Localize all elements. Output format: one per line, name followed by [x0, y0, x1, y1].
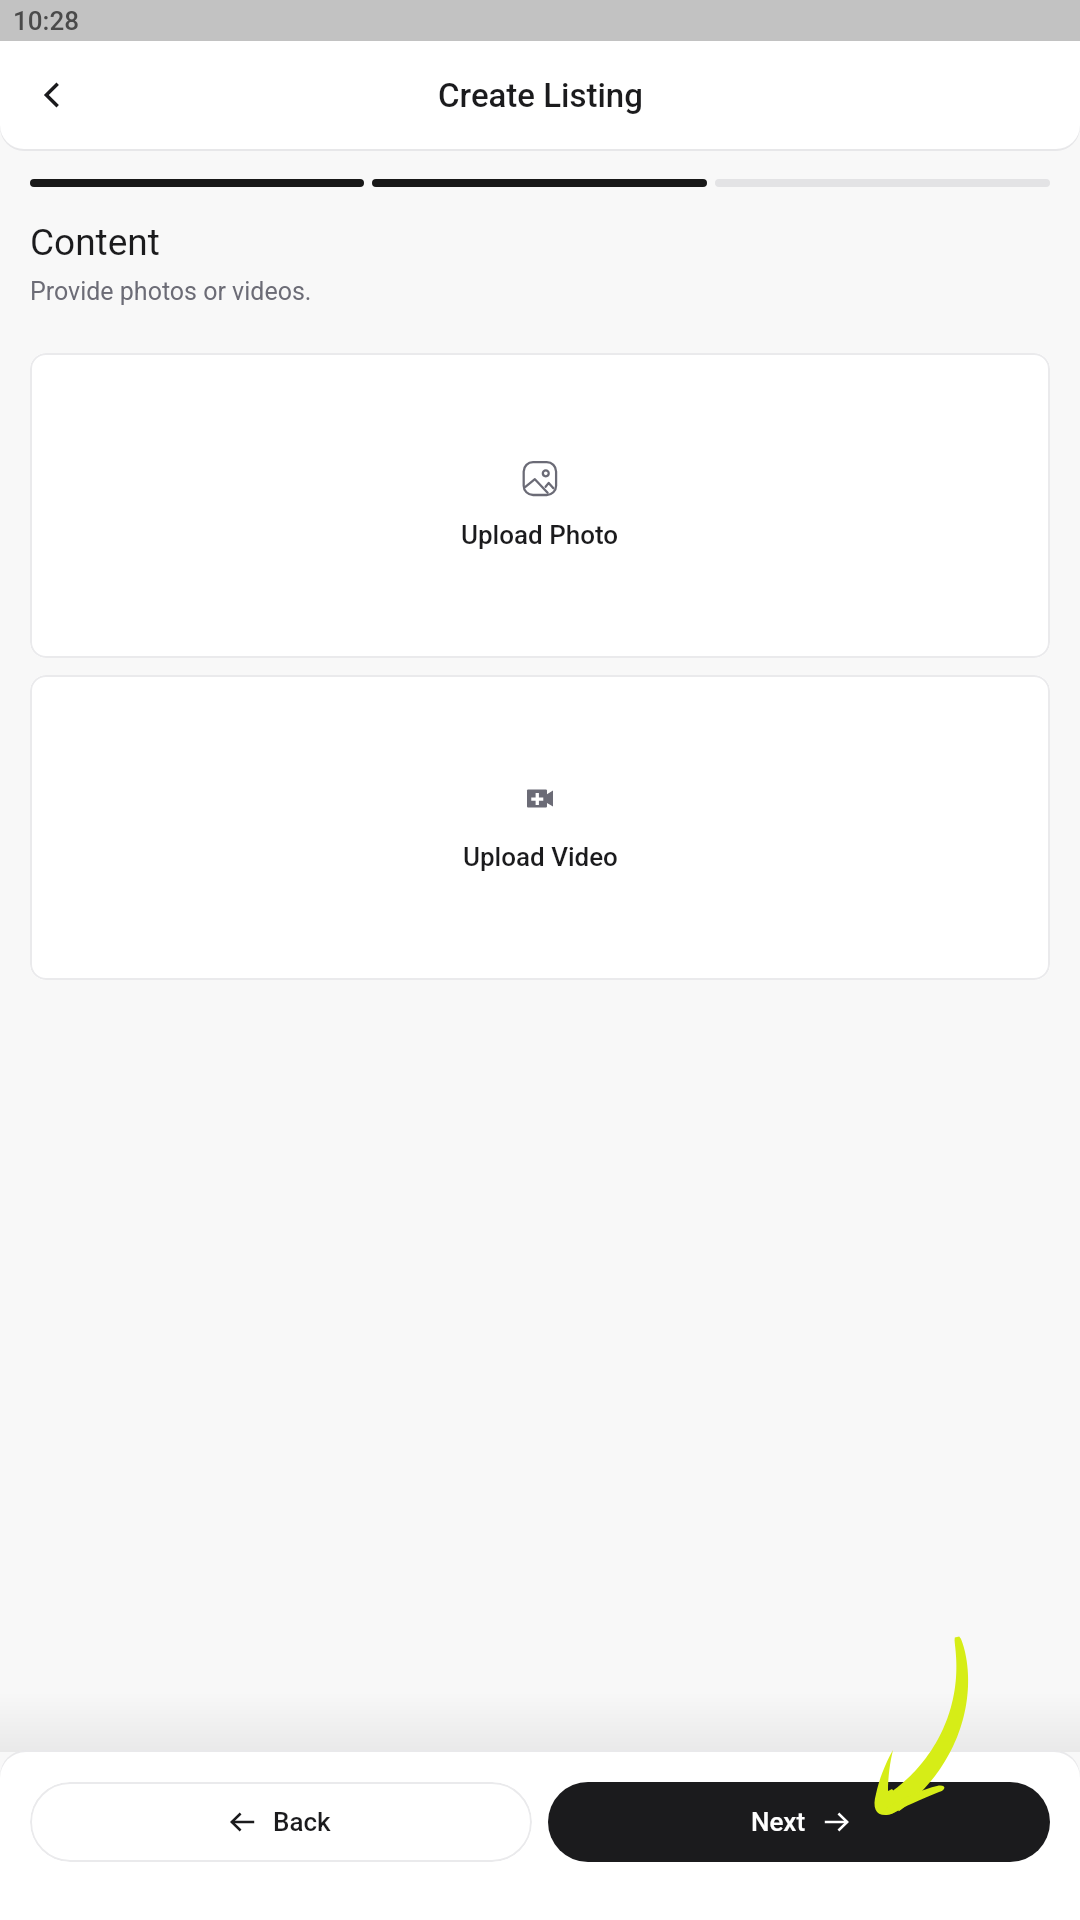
button[interactable]: Next [548, 1782, 1050, 1862]
staticText: Upload Video [463, 842, 618, 872]
staticText: Create Listing [438, 76, 643, 115]
staticText: Back [273, 1807, 331, 1837]
staticText: 10:28 [13, 6, 79, 36]
staticText: Content [30, 221, 160, 264]
staticText: Upload Photo [461, 520, 619, 550]
staticText: Provide photos or videos. [30, 277, 312, 306]
button[interactable]: Back [30, 1782, 532, 1862]
staticText: Next [751, 1807, 806, 1837]
button[interactable]: Back [23, 66, 81, 124]
button[interactable]: Upload Photo [30, 353, 1050, 658]
button[interactable]: Upload Video [30, 675, 1050, 980]
